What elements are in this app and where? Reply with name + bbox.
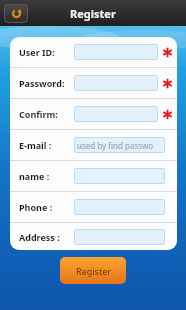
staticText: Phone :	[19, 201, 74, 213]
button[interactable]	[74, 106, 158, 122]
button[interactable]: Register	[60, 257, 126, 284]
button[interactable]: E-mail :	[10, 130, 177, 160]
button[interactable]: Back	[4, 4, 28, 23]
staticText: Register	[70, 6, 116, 21]
button[interactable]	[74, 75, 158, 91]
staticText: name :	[19, 170, 74, 182]
button[interactable]: Confirm:	[10, 99, 177, 129]
button[interactable]	[74, 199, 165, 215]
button[interactable]: Address :	[10, 223, 177, 250]
staticText: Register	[76, 265, 111, 277]
button[interactable]: Password:	[10, 68, 177, 98]
staticText: Password:	[19, 77, 74, 89]
button[interactable]	[74, 229, 165, 245]
button[interactable]: Phone :	[10, 192, 177, 222]
staticText: Confirm:	[19, 108, 74, 120]
staticText: User ID:	[19, 46, 74, 58]
staticText: Address :	[19, 231, 74, 243]
button[interactable]: used by find passwo	[74, 137, 165, 153]
staticText: E-mail :	[19, 139, 74, 151]
staticText: used by find passwo	[77, 140, 154, 151]
button[interactable]: name :	[10, 161, 177, 191]
button[interactable]: User ID:	[10, 37, 177, 67]
button[interactable]	[74, 44, 158, 60]
button[interactable]	[74, 168, 165, 184]
